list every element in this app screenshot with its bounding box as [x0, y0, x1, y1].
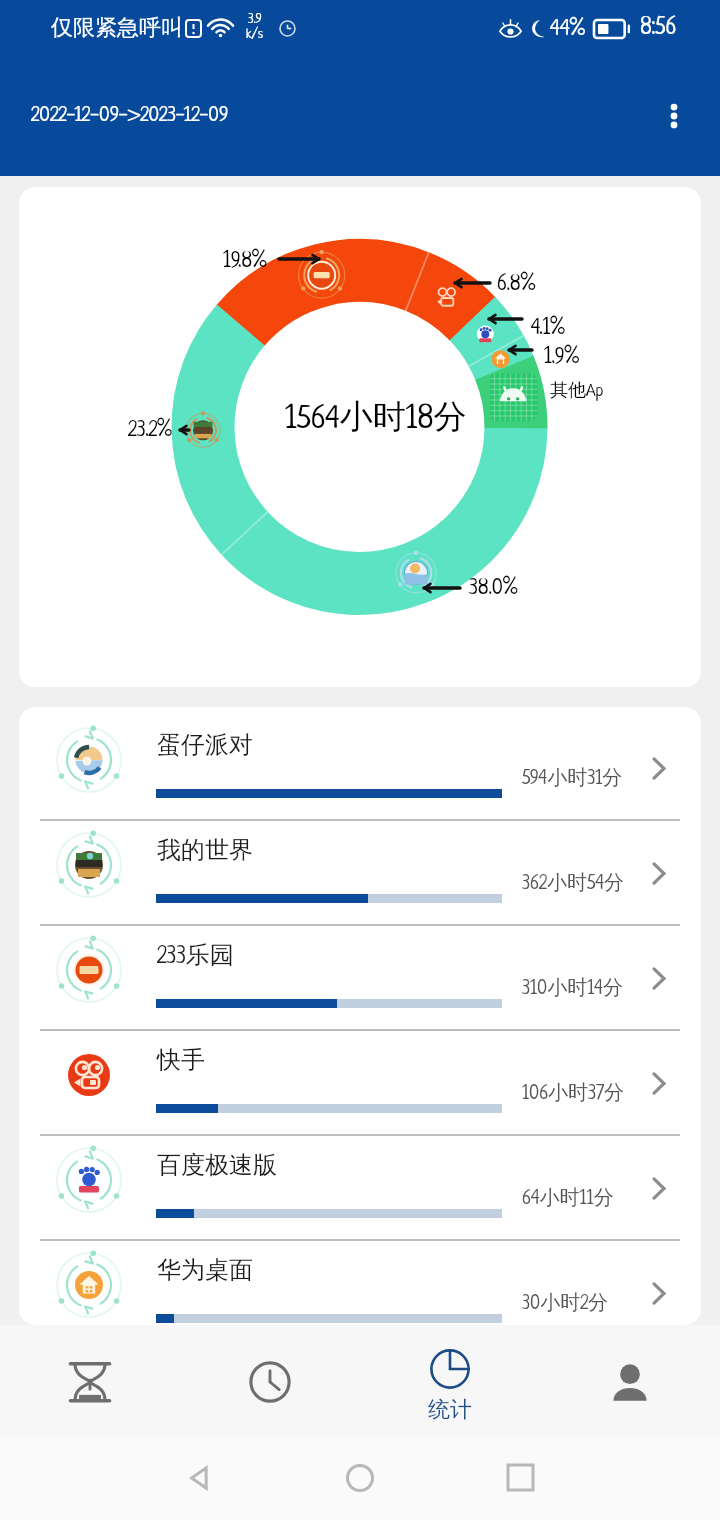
staticText: 362小时54分 — [522, 870, 625, 895]
button[interactable]: History — [180, 1325, 360, 1435]
staticText: 8:56 — [640, 16, 677, 41]
button[interactable]: 蛋仔派对 — [19, 716, 701, 819]
staticText: 30小时2分 — [522, 1290, 609, 1315]
button[interactable]: 百度极速版 — [19, 1136, 701, 1239]
staticText: 38.0% — [469, 577, 518, 600]
staticText: 6.8% — [497, 273, 536, 296]
button[interactable]: More options — [642, 84, 706, 148]
button[interactable]: 华为桌面 — [19, 1241, 701, 1325]
button[interactable]: 233乐园 — [19, 926, 701, 1029]
staticText: 3.9 — [248, 12, 262, 27]
staticText: 310小时14分 — [522, 975, 623, 1000]
staticText: 233乐园 — [157, 940, 234, 970]
staticText: 1.9% — [544, 346, 579, 369]
staticText: 快手 — [157, 1045, 205, 1075]
staticText: 蛋仔派对 — [157, 730, 253, 760]
staticText: 4.1% — [531, 317, 565, 340]
staticText: 106小时37分 — [522, 1080, 624, 1105]
button[interactable]: Profile — [540, 1325, 720, 1435]
button[interactable]: Recents — [440, 1435, 600, 1520]
button[interactable]: Back — [120, 1435, 280, 1520]
staticText: 仅限紧急呼叫 — [51, 14, 183, 42]
button[interactable]: 我的世界 — [19, 821, 701, 924]
staticText: 1564小时18分 — [285, 396, 467, 438]
staticText: 我的世界 — [157, 835, 253, 865]
staticText: 594小时31分 — [522, 765, 623, 790]
staticText: 64小时11分 — [522, 1185, 614, 1210]
staticText: 统计 — [428, 1396, 472, 1424]
staticText: 百度极速版 — [157, 1150, 277, 1180]
staticText: 44% — [550, 17, 585, 41]
staticText: 华为桌面 — [157, 1255, 253, 1285]
button[interactable]: Timer — [0, 1325, 180, 1435]
button[interactable]: Home — [280, 1435, 440, 1520]
staticText: 19.8% — [223, 250, 267, 273]
button[interactable]: 快手 — [19, 1031, 701, 1134]
button[interactable]: Statistics — [360, 1325, 540, 1435]
staticText: 其他Ap — [550, 379, 604, 402]
staticText: 2022-12-09->2023-12-09 — [31, 105, 229, 127]
staticText: k/s — [246, 27, 264, 42]
staticText: 23.2% — [128, 419, 172, 442]
